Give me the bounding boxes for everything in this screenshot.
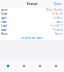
staticText: Card (1, 24, 7, 28)
staticText: Total (1, 12, 7, 16)
button[interactable]: Cards (16, 60, 32, 72)
staticText: Note (1, 32, 8, 36)
staticText: Coffee (53, 16, 63, 20)
staticText: State (1, 28, 7, 32)
staticText: Store (1, 8, 8, 12)
button[interactable]: Card (0, 24, 64, 28)
button[interactable]: Store (0, 8, 64, 12)
button[interactable]: Type (0, 16, 64, 20)
button[interactable]: Settings (48, 60, 64, 72)
button[interactable]: Report an Issue (0, 36, 64, 40)
staticText: Type (1, 16, 7, 20)
button[interactable]: Date (0, 20, 64, 24)
button[interactable]: Note (0, 32, 64, 36)
staticText: Posted (53, 28, 63, 32)
staticText: •••• 4417 (50, 24, 63, 28)
staticText: Blue Bottle (46, 8, 63, 12)
button[interactable]: Total (0, 12, 64, 16)
button[interactable]: State (0, 28, 64, 32)
staticText: Date (1, 20, 7, 24)
button[interactable]: Activity (32, 60, 48, 72)
button[interactable]: Done (53, 0, 63, 8)
staticText: None (55, 32, 63, 36)
staticText: Mar 4 (56, 20, 63, 24)
staticText: Report an Issue (21, 36, 43, 40)
staticText: $18.40 (52, 12, 63, 16)
staticText: Done (54, 2, 62, 6)
staticText: Receipt (26, 2, 37, 6)
button[interactable]: Home (0, 60, 16, 72)
